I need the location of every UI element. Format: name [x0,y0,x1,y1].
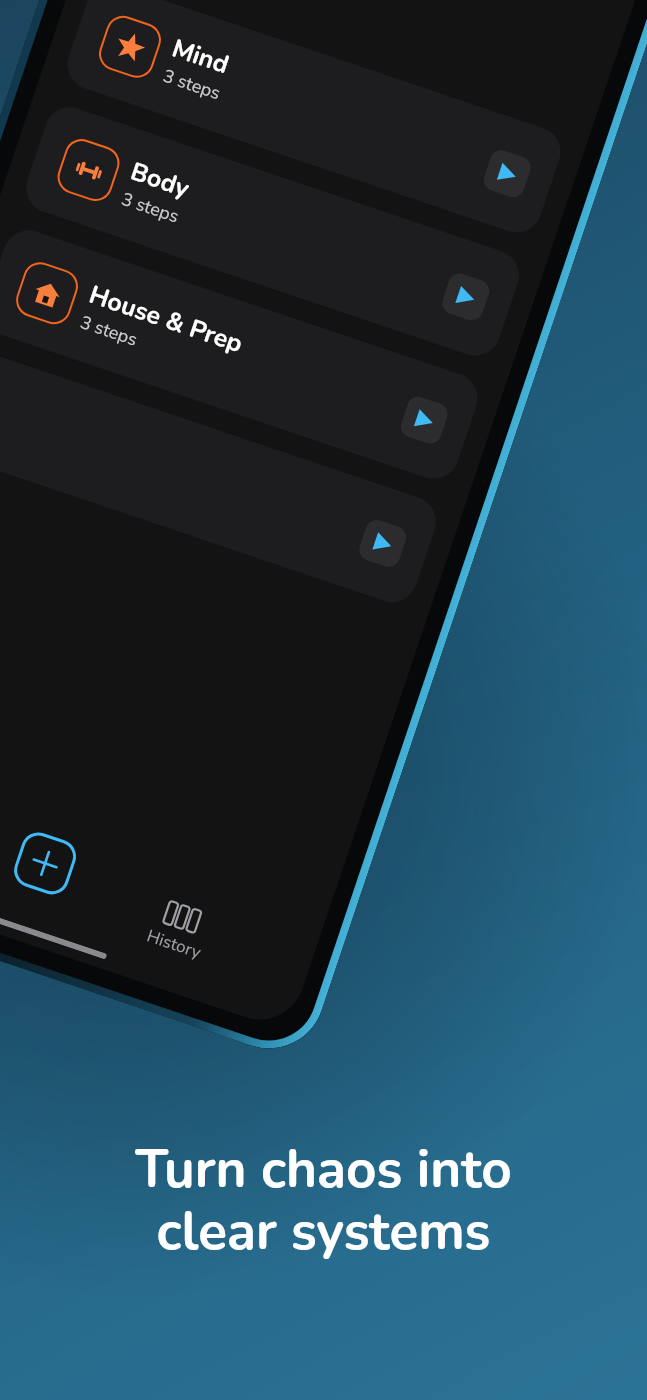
staticText: 3 steps [118,187,182,229]
staticText: Body [126,155,194,206]
button[interactable]: Mind [61,0,567,239]
button[interactable]: History [144,896,214,964]
staticText: 3 steps [160,64,223,106]
button[interactable]: Start routine [439,270,492,324]
staticText: Mind [168,31,233,82]
button[interactable]: Start routine [0,347,443,609]
staticText: House & Prep [85,278,247,361]
button[interactable]: Start routine [481,147,534,200]
button[interactable]: Start routine [398,394,451,447]
staticText: 3 steps [77,310,141,353]
button[interactable]: Body [19,100,526,362]
button[interactable]: House & Prep [0,224,484,486]
staticText: History [144,924,204,964]
staticText: clear systems [0,1195,647,1267]
button[interactable]: Add routine [10,828,80,899]
staticText: Turn chaos into [0,1133,647,1205]
button[interactable]: Start routine [356,517,409,570]
